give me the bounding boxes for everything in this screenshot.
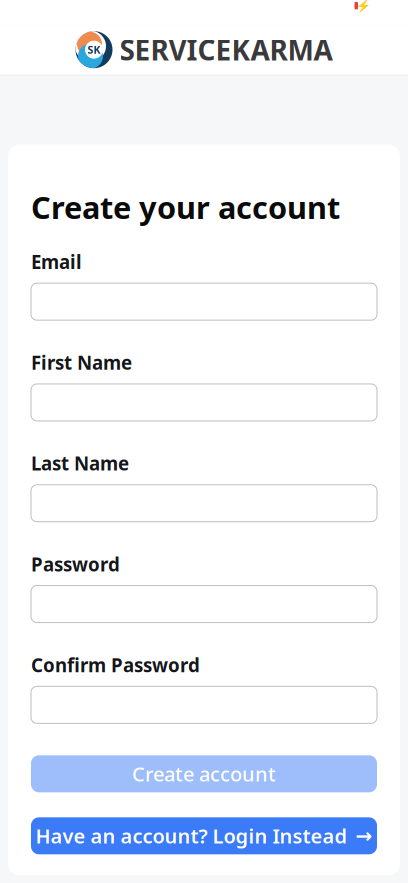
staticText: → <box>355 824 372 847</box>
staticText: SERVICEKARMA <box>119 31 332 68</box>
staticText: Password <box>31 552 120 577</box>
button[interactable]: Have an account? Login Instead <box>31 817 377 854</box>
staticText: Last Name <box>31 451 129 476</box>
staticText: ⚡ <box>356 0 371 12</box>
staticText: First Name <box>31 350 132 375</box>
staticText: Have an account? Login Instead <box>35 823 347 849</box>
button[interactable]: Create account <box>31 755 377 792</box>
staticText: Confirm Password <box>31 652 200 677</box>
staticText: Create account <box>132 761 276 787</box>
staticText: Create your account <box>31 187 340 227</box>
staticText: SK <box>87 43 100 57</box>
staticText: Email <box>31 249 82 274</box>
